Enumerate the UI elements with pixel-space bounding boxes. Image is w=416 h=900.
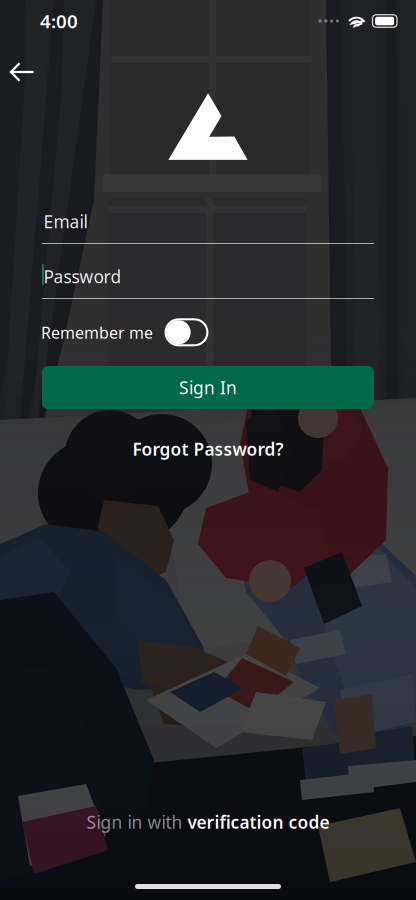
staticText: Password bbox=[43, 265, 121, 288]
button[interactable]: Sign In bbox=[42, 366, 374, 409]
button[interactable]: Forgot Password? bbox=[42, 436, 374, 462]
button[interactable]: Remember me bbox=[166, 319, 207, 345]
staticText: 4:00 bbox=[40, 9, 78, 33]
button[interactable]: Back bbox=[0, 50, 44, 94]
staticText: Sign in with bbox=[86, 810, 182, 833]
staticText: Remember me bbox=[41, 322, 153, 343]
staticText: verification code bbox=[187, 810, 329, 833]
staticText: Email bbox=[43, 210, 87, 233]
staticText: Sign In bbox=[179, 376, 237, 399]
staticText: Forgot Password? bbox=[132, 437, 283, 460]
button[interactable]: Sign in with bbox=[42, 808, 374, 836]
